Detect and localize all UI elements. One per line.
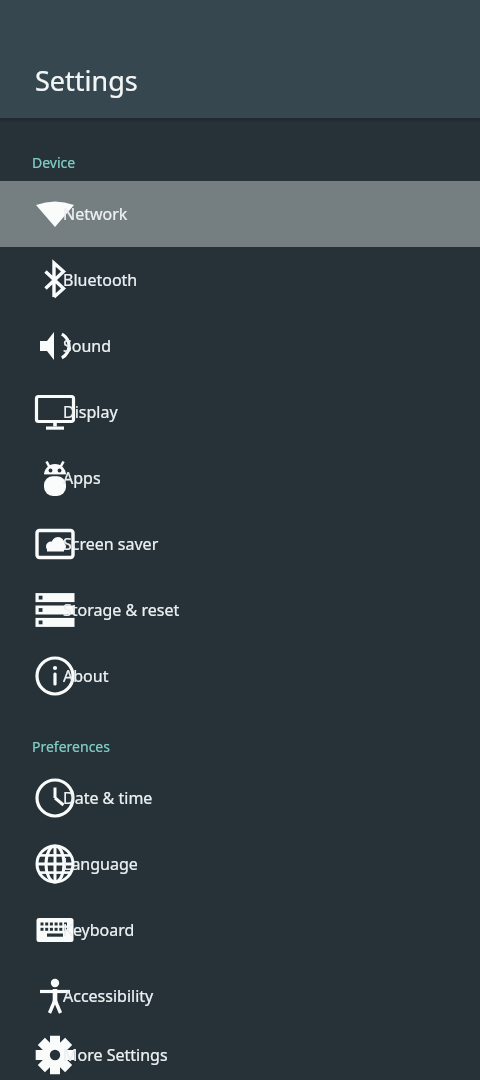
- button[interactable]: Screen saver: [0, 511, 480, 577]
- staticText: Display: [63, 401, 118, 423]
- staticText: Storage & reset: [63, 599, 180, 621]
- button[interactable]: Language: [0, 831, 480, 897]
- staticText: Screen saver: [63, 533, 159, 555]
- button[interactable]: Keyboard: [0, 897, 480, 963]
- button[interactable]: Sound: [0, 313, 480, 379]
- staticText: Accessibility: [63, 985, 154, 1007]
- staticText: Language: [63, 853, 138, 875]
- staticText: Date & time: [63, 787, 153, 809]
- staticText: About: [63, 665, 109, 687]
- staticText: Settings: [35, 62, 138, 99]
- staticText: Network: [63, 203, 128, 225]
- button[interactable]: About: [0, 643, 480, 709]
- staticText: Device: [32, 153, 76, 172]
- button[interactable]: Accessibility: [0, 963, 480, 1029]
- button[interactable]: Storage & reset: [0, 577, 480, 643]
- staticText: Bluetooth: [63, 269, 138, 291]
- staticText: More Settings: [63, 1044, 168, 1066]
- staticText: Apps: [63, 467, 101, 489]
- button[interactable]: More Settings: [0, 1029, 480, 1080]
- staticText: Preferences: [32, 737, 110, 756]
- button[interactable]: Display: [0, 379, 480, 445]
- button[interactable]: Date & time: [0, 765, 480, 831]
- button[interactable]: Apps: [0, 445, 480, 511]
- staticText: Sound: [63, 335, 112, 357]
- button[interactable]: Bluetooth: [0, 247, 480, 313]
- button[interactable]: Network: [0, 181, 480, 247]
- staticText: Keyboard: [63, 919, 135, 941]
